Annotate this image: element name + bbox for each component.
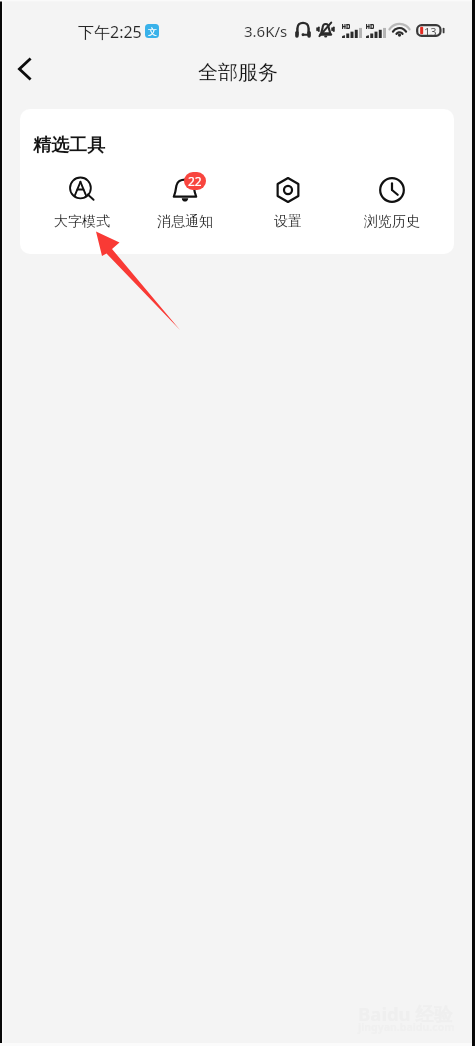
staticText: 3.6K/s [244, 21, 288, 41]
button[interactable]: 浏览历史 [340, 175, 444, 231]
staticText: 浏览历史 [364, 213, 420, 231]
staticText: 精选工具 [33, 134, 105, 157]
button[interactable]: Back [3, 47, 47, 91]
staticText: 13 [424, 24, 437, 37]
staticText: 文 [148, 26, 157, 37]
button[interactable]: 设置 [236, 175, 340, 231]
staticText: 设置 [274, 213, 302, 231]
staticText: 消息通知 [157, 213, 213, 231]
staticText: 全部服务 [198, 60, 278, 85]
staticText: 下午2:25 [78, 21, 142, 43]
staticText: 22 [188, 173, 202, 189]
button[interactable]: 大字模式 [30, 175, 133, 231]
staticText: 大字模式 [54, 213, 110, 231]
button[interactable]: 22 [133, 175, 236, 231]
